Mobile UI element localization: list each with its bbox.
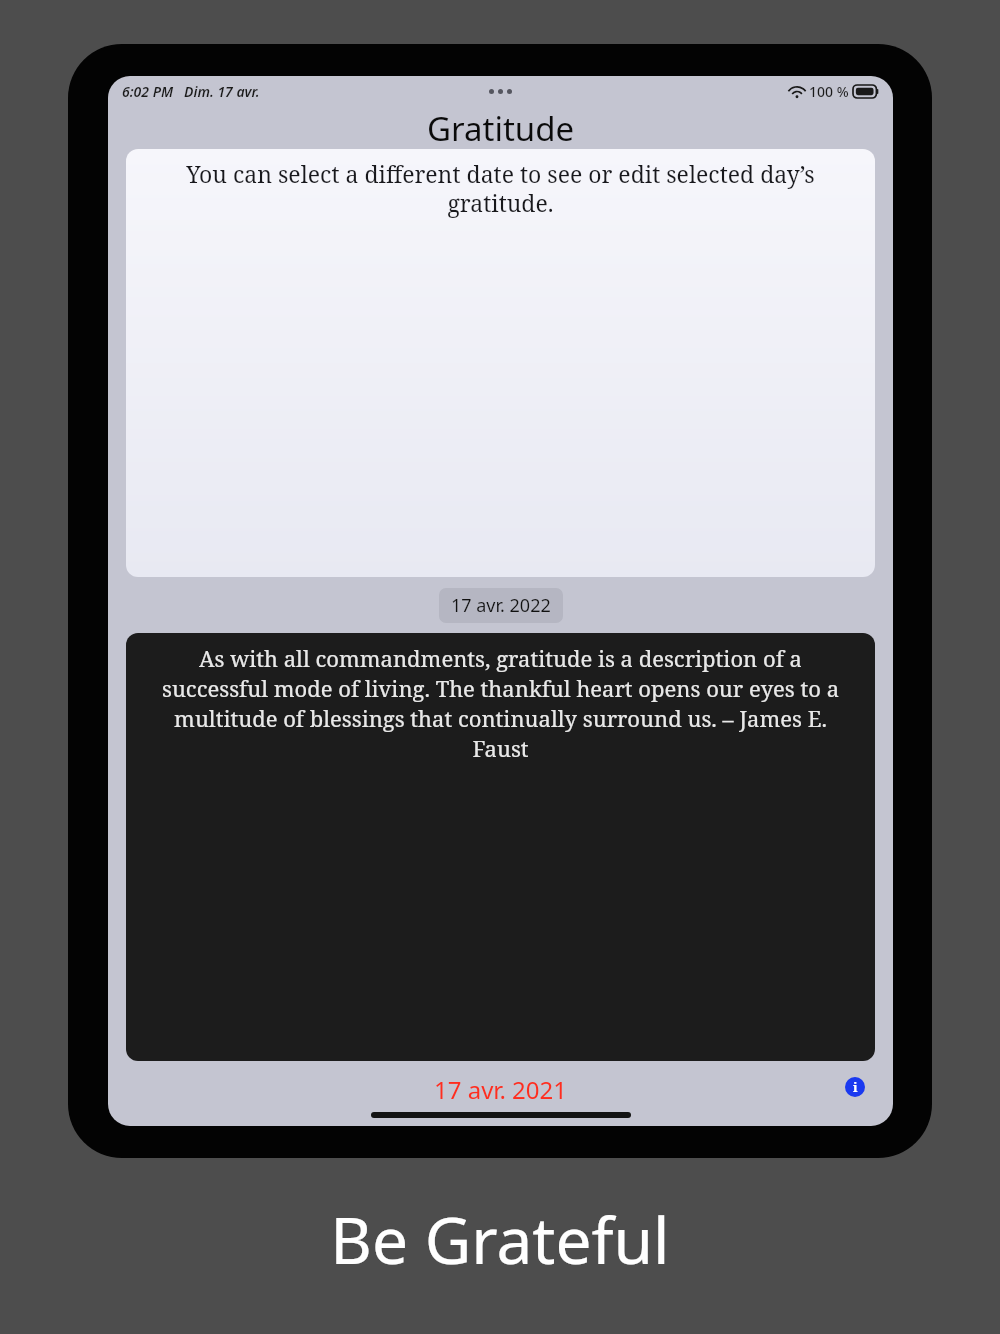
button[interactable]: 17 avr. 2021 [434, 1073, 568, 1106]
button[interactable]: You can select a different date to see o… [126, 149, 875, 577]
staticText: As with all commandments, gratitude is a… [146, 643, 855, 763]
staticText: 17 avr. 2022 [451, 593, 551, 618]
button[interactable]: Information [845, 1077, 865, 1097]
staticText: Be Grateful [330, 1196, 670, 1283]
staticText: 6:02 PM [122, 82, 174, 101]
staticText: Dim. 17 avr. [184, 82, 260, 101]
staticText: You can select a different date to see o… [140, 158, 861, 219]
staticText: 100 % [809, 82, 849, 101]
staticText: i [853, 1078, 858, 1096]
button[interactable]: As with all commandments, gratitude is a… [126, 633, 875, 1061]
button[interactable]: 17 avr. 2022 [439, 588, 563, 623]
staticText: Gratitude [427, 106, 575, 149]
